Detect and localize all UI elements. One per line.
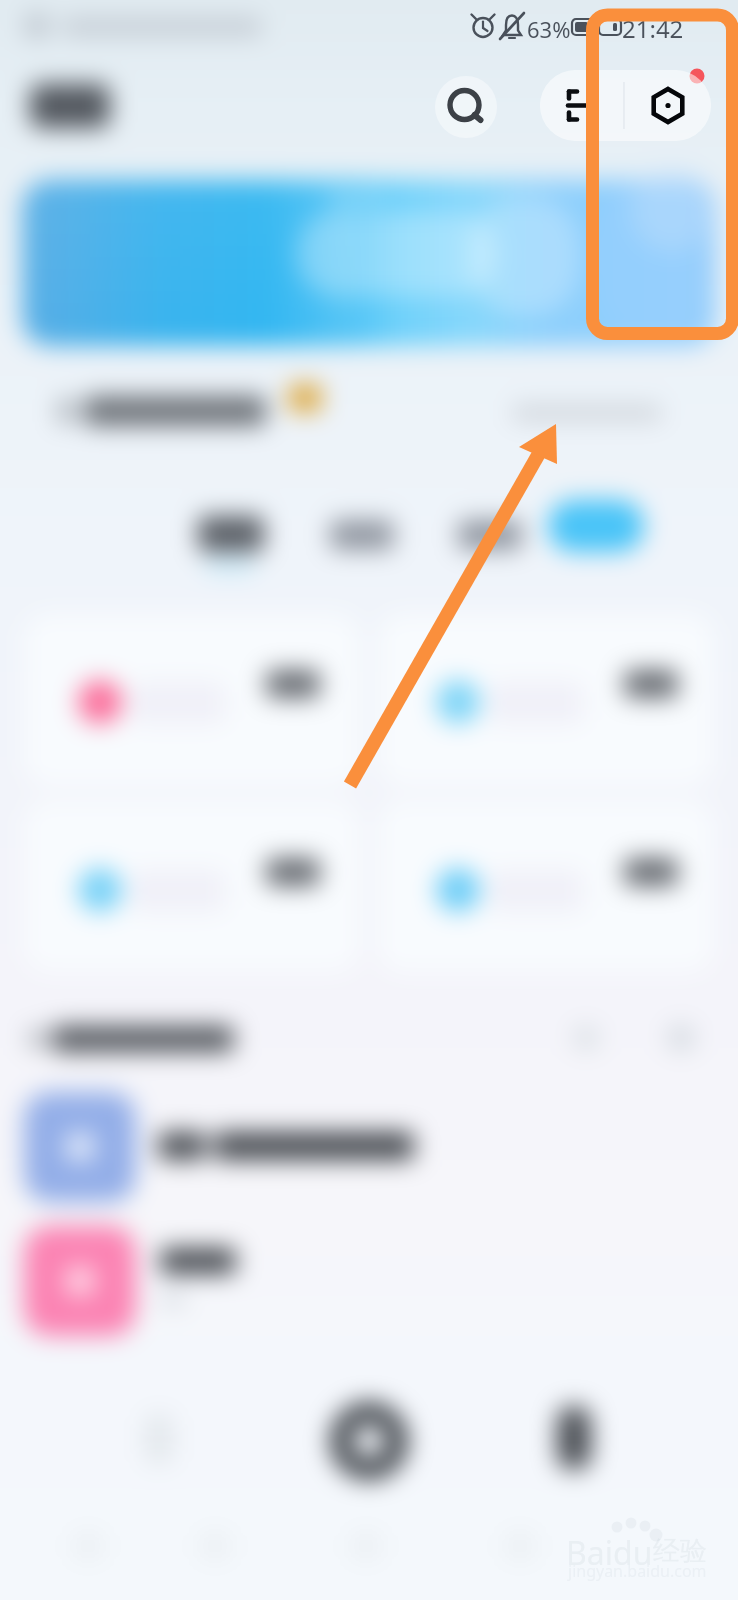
button[interactable]: Smart assistant: [624, 70, 711, 141]
staticText: jingyan.baidu.com: [568, 1560, 707, 1582]
button[interactable]: Scan: [540, 70, 624, 141]
staticText: 63%: [527, 14, 571, 44]
button[interactable]: Search: [435, 76, 497, 138]
staticText: Baidu: [566, 1531, 653, 1575]
staticText: 经验: [653, 1534, 707, 1568]
staticText: 21:42: [622, 12, 684, 45]
